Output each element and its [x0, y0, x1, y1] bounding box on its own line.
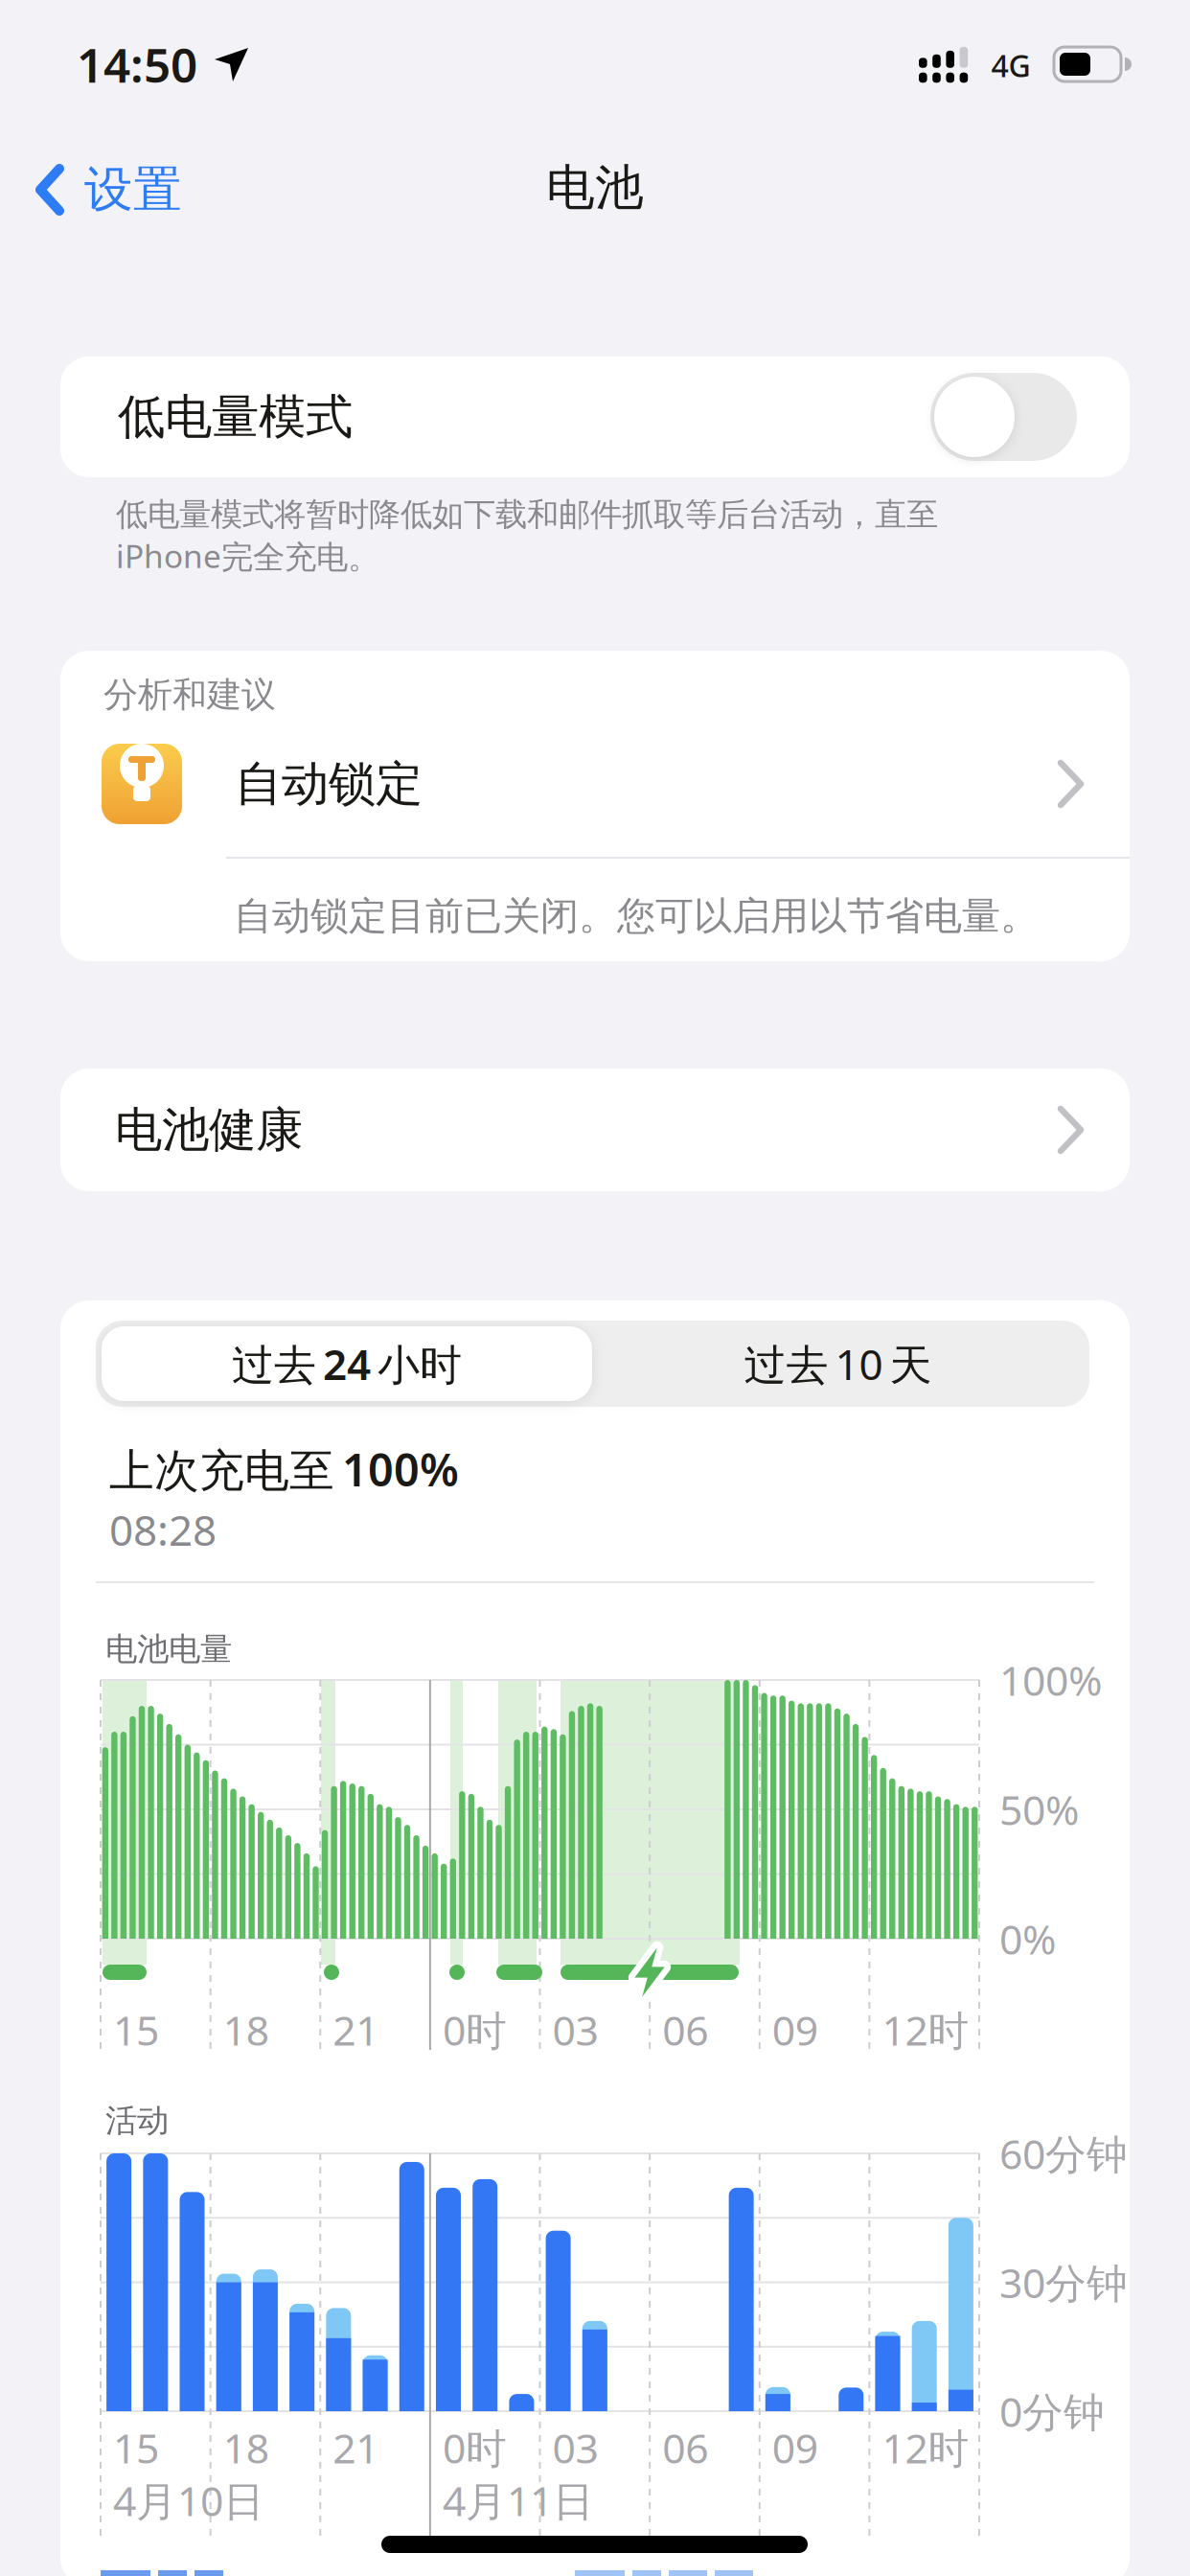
- staticText: 电池: [546, 158, 644, 218]
- staticText: 100%: [999, 1653, 1102, 1707]
- button[interactable]: 过去 24 小时: [102, 1326, 592, 1401]
- staticText: 50%: [999, 1782, 1079, 1837]
- staticText: 09: [772, 2420, 818, 2475]
- staticText: 0分钟: [999, 2384, 1105, 2438]
- staticText: 0时: [443, 2003, 507, 2057]
- staticText: 低电量模式: [118, 388, 353, 446]
- staticText: 0时: [443, 2420, 507, 2475]
- staticText: 06: [662, 2003, 708, 2057]
- staticText: 电池健康: [115, 1101, 303, 1159]
- button[interactable]: 自动锁定: [60, 717, 1130, 851]
- staticText: 活动: [105, 2101, 169, 2140]
- staticText: 09: [772, 2003, 818, 2057]
- staticText: 过去 24 小时: [232, 1336, 462, 1392]
- staticText: 上次充电至 100%: [109, 1439, 459, 1499]
- button[interactable]: 设置: [36, 151, 266, 228]
- staticText: 03: [552, 2420, 598, 2475]
- staticText: 自动锁定: [235, 755, 423, 813]
- staticText: 4月10日: [113, 2473, 264, 2528]
- staticText: 03: [552, 2003, 598, 2057]
- staticText: 自动锁定目前已关闭。您可以启用以节省电量。: [234, 893, 1039, 940]
- staticText: 过去 10 天: [744, 1336, 932, 1392]
- staticText: 低电量模式将暂时降低如下载和邮件抓取等后台活动，直至: [116, 495, 938, 534]
- staticText: 18: [223, 2003, 269, 2057]
- staticText: 06: [662, 2420, 708, 2475]
- staticText: 21: [333, 2003, 379, 2057]
- staticText: 12时: [882, 2420, 969, 2475]
- staticText: 4月11日: [443, 2473, 594, 2528]
- staticText: 18: [223, 2420, 269, 2475]
- staticText: iPhone完全充电。: [116, 535, 379, 577]
- staticText: 电池电量: [105, 1630, 232, 1669]
- staticText: 4G: [991, 45, 1030, 86]
- button[interactable]: 低电量模式: [930, 373, 1077, 461]
- staticText: 30分钟: [999, 2255, 1128, 2309]
- staticText: 15: [113, 2420, 159, 2475]
- staticText: 分析和建议: [103, 674, 276, 716]
- staticText: 12时: [882, 2003, 969, 2057]
- staticText: 21: [333, 2420, 379, 2475]
- button[interactable]: 电池健康: [60, 1069, 1130, 1191]
- staticText: 0%: [999, 1912, 1056, 1966]
- button[interactable]: 过去 10 天: [592, 1326, 1084, 1401]
- staticText: 60分钟: [999, 2126, 1128, 2181]
- staticText: 14:50: [77, 33, 197, 96]
- staticText: 15: [113, 2003, 159, 2057]
- staticText: 设置: [84, 160, 182, 220]
- staticText: 08:28: [109, 1502, 217, 1557]
